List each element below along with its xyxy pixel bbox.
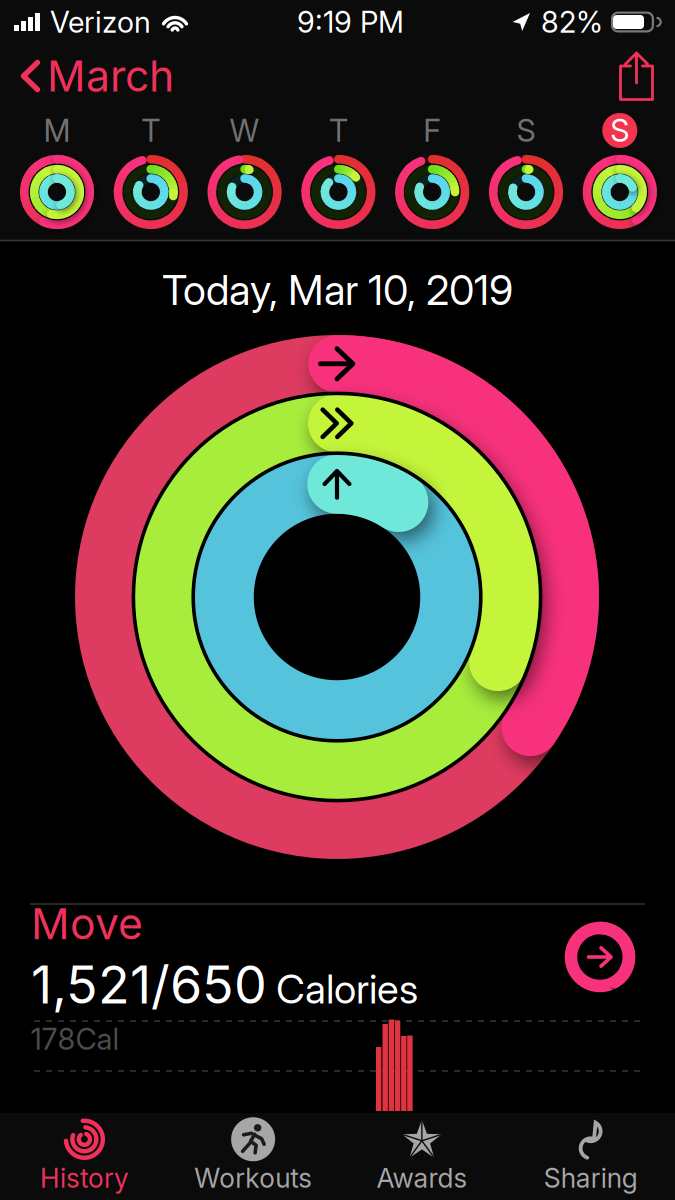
staticText: March (47, 51, 174, 101)
button[interactable]: F activity (385, 110, 479, 230)
button[interactable]: T activity (291, 110, 385, 230)
button[interactable]: Workouts (169, 1113, 338, 1200)
staticText: 1,521/650 (31, 954, 267, 1015)
staticText: S (610, 112, 629, 149)
button[interactable]: M activity (10, 110, 104, 230)
button[interactable]: March (7, 42, 188, 110)
button[interactable]: Sharing (506, 1113, 675, 1200)
staticText: M (43, 112, 70, 149)
staticText: Today, Mar 10, 2019 (162, 266, 513, 314)
staticText: F (423, 112, 441, 149)
button[interactable]: S activity (573, 110, 667, 230)
button[interactable]: History (0, 1113, 169, 1200)
staticText: Sharing (544, 1162, 638, 1194)
staticText: T (329, 112, 348, 149)
staticText: W (230, 112, 260, 149)
staticText: Verizon (50, 5, 151, 39)
staticText: S (516, 112, 535, 149)
staticText: T (141, 112, 160, 149)
staticText: 178Cal (30, 1022, 119, 1056)
staticText: 9:19 PM (297, 5, 404, 39)
button[interactable]: Awards (337, 1113, 506, 1200)
staticText: 82% (541, 5, 603, 39)
button[interactable]: T activity (104, 110, 198, 230)
button[interactable]: S activity (479, 110, 573, 230)
staticText: Awards (376, 1162, 467, 1194)
button[interactable]: Share (605, 46, 668, 106)
staticText: Calories (276, 965, 418, 1013)
staticText: History (40, 1162, 129, 1194)
staticText: Move (31, 899, 143, 949)
staticText: Workouts (194, 1162, 312, 1194)
button[interactable]: W activity (198, 110, 291, 230)
button[interactable]: Move details (556, 913, 644, 1001)
